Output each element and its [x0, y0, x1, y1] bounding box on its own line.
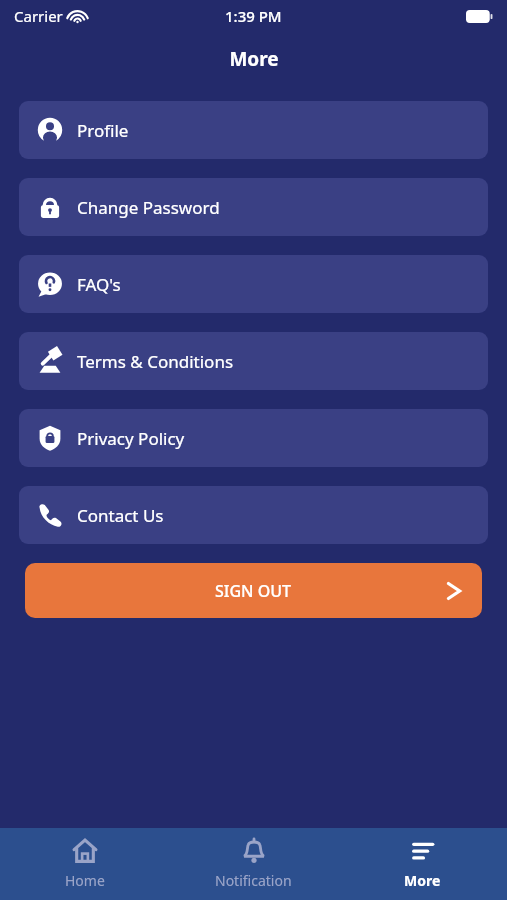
staticText: Terms & Conditions — [77, 350, 234, 373]
staticText: FAQ's — [77, 273, 121, 296]
staticText: More — [404, 871, 441, 890]
staticText: Home — [65, 871, 105, 890]
button[interactable]: Contact Us — [19, 486, 488, 544]
button[interactable]: Change Password — [19, 178, 488, 236]
staticText: Profile — [77, 119, 129, 142]
staticText: Contact Us — [77, 504, 164, 527]
staticText: SIGN OUT — [215, 580, 292, 602]
staticText: Privacy Policy — [77, 427, 185, 450]
button[interactable]: Notification — [169, 828, 338, 900]
button[interactable]: Terms & Conditions — [19, 332, 488, 390]
staticText: 1:39 PM — [225, 6, 282, 26]
button[interactable]: More — [338, 828, 507, 900]
button[interactable]: FAQ's — [19, 255, 488, 313]
staticText: Notification — [215, 871, 292, 890]
staticText: More — [229, 46, 279, 72]
staticText: Carrier — [14, 6, 63, 26]
button[interactable]: Profile — [19, 101, 488, 159]
staticText: Change Password — [77, 196, 220, 219]
button[interactable]: Home — [0, 828, 169, 900]
button[interactable]: SIGN OUT — [25, 563, 482, 618]
button[interactable]: Privacy Policy — [19, 409, 488, 467]
